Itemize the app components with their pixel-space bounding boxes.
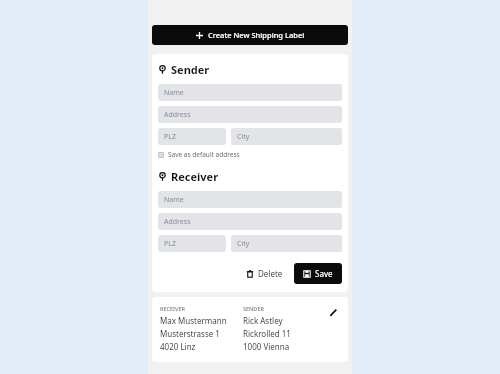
button[interactable]: Delete	[241, 264, 288, 283]
button[interactable]: PLZ	[158, 128, 226, 145]
button[interactable]: RECEIVER	[152, 297, 348, 362]
button[interactable]: Name	[158, 84, 342, 101]
button[interactable]: City	[231, 128, 342, 145]
staticText: PLZ	[164, 132, 176, 142]
button[interactable]: Create New Shipping Label	[152, 25, 348, 45]
staticText: Rick Astley	[243, 315, 283, 326]
button[interactable]: Address	[158, 213, 342, 230]
staticText: SENDER	[243, 305, 264, 312]
staticText: Sender	[171, 62, 210, 77]
staticText: 1000 Vienna	[243, 341, 290, 352]
staticText: Name	[164, 195, 184, 205]
staticText: Create New Shipping Label	[208, 30, 305, 40]
staticText: Address	[164, 217, 191, 227]
staticText: RECEIVER	[160, 305, 185, 312]
staticText: Save as default address	[168, 150, 240, 159]
button[interactable]: Address	[158, 106, 342, 123]
button[interactable]: Save	[294, 263, 342, 284]
staticText: Name	[164, 88, 184, 98]
staticText: Rickrolled 11	[243, 328, 291, 339]
button[interactable]: Edit	[326, 305, 340, 319]
staticText: City	[237, 239, 250, 249]
button[interactable]: City	[231, 235, 342, 252]
button[interactable]: Name	[158, 191, 342, 208]
staticText: Musterstrasse 1	[160, 328, 220, 339]
staticText: City	[237, 132, 250, 142]
staticText: 4020 Linz	[160, 341, 196, 352]
staticText: Save	[315, 268, 333, 279]
staticText: Receiver	[171, 169, 219, 184]
staticText: Address	[164, 110, 191, 120]
staticText: Delete	[258, 268, 283, 279]
button[interactable]: PLZ	[158, 235, 226, 252]
staticText: PLZ	[164, 239, 176, 249]
staticText: Max Mustermann	[160, 315, 227, 326]
button[interactable]: Save as default address	[158, 150, 240, 159]
